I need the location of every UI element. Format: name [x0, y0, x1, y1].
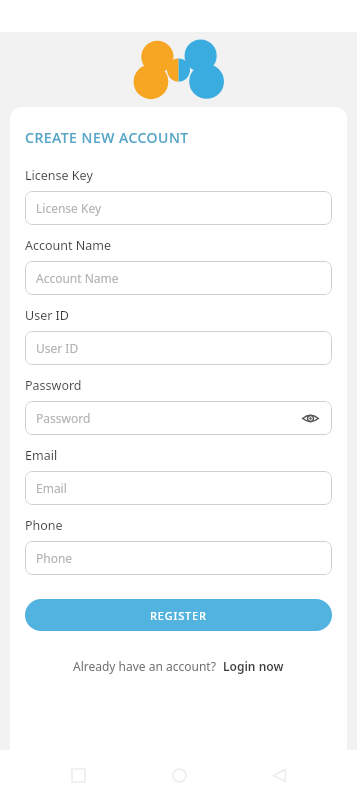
staticText: Phone	[36, 550, 73, 566]
button[interactable]: Toggle password visibility	[299, 407, 321, 429]
staticText: Phone	[25, 517, 63, 534]
staticText: Login now	[223, 658, 284, 674]
staticText: User ID	[25, 307, 69, 324]
staticText: Email	[25, 447, 58, 464]
button[interactable]: License Key	[25, 191, 332, 225]
button[interactable]: Password	[25, 401, 332, 435]
staticText: Account Name	[25, 237, 112, 254]
staticText: Email	[36, 480, 67, 496]
staticText: Password	[25, 377, 82, 394]
button[interactable]: Login now	[223, 658, 284, 674]
button[interactable]: Email	[25, 471, 332, 505]
staticText: Account Name	[36, 270, 119, 286]
button[interactable]: Account Name	[25, 261, 332, 295]
button[interactable]: REGISTER	[25, 599, 332, 631]
button[interactable]: Phone	[25, 541, 332, 575]
staticText: Password	[36, 410, 91, 426]
button[interactable]: Recent apps	[56, 753, 100, 797]
staticText: License Key	[25, 167, 93, 184]
staticText: User ID	[36, 340, 79, 356]
staticText: CREATE NEW ACCOUNT	[25, 128, 189, 147]
staticText: License Key	[36, 200, 102, 216]
staticText: REGISTER	[150, 608, 207, 623]
button[interactable]: User ID	[25, 331, 332, 365]
staticText: Already have an account?	[73, 658, 216, 674]
